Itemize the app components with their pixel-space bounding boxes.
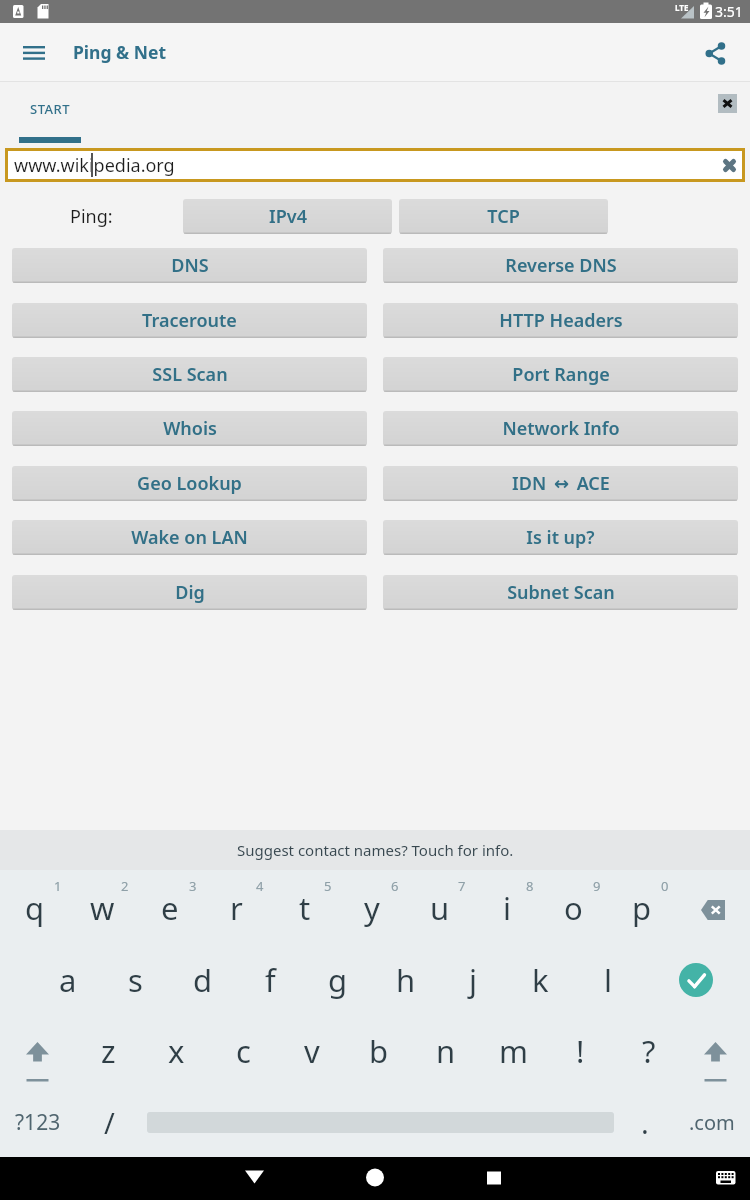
button[interactable]: Key g xyxy=(304,945,371,1015)
button[interactable]: IDN ↔ ACE xyxy=(383,466,738,501)
button[interactable]: Clear text xyxy=(717,153,741,177)
staticText: LTE xyxy=(675,2,689,13)
staticText: START xyxy=(30,100,71,118)
button[interactable]: Key m xyxy=(480,1016,547,1086)
button[interactable]: Key d xyxy=(169,945,236,1015)
staticText: e xyxy=(161,887,179,929)
staticText: y xyxy=(364,887,380,929)
staticText: 0 xyxy=(661,877,669,895)
button[interactable]: Key f xyxy=(237,945,304,1015)
staticText: x xyxy=(168,1030,185,1072)
button[interactable]: DNS xyxy=(12,248,367,283)
staticText: . xyxy=(641,1103,649,1142)
button[interactable]: Key p xyxy=(608,873,675,943)
staticText: z xyxy=(101,1030,116,1072)
button[interactable]: Wake on LAN xyxy=(12,520,367,555)
button[interactable]: Switch keyboard xyxy=(700,1157,750,1200)
staticText: Network Info xyxy=(502,416,620,441)
staticText: i xyxy=(503,887,511,929)
staticText: ?123 xyxy=(15,1108,61,1137)
button[interactable]: Key r xyxy=(203,873,270,943)
button[interactable]: Recents xyxy=(464,1157,524,1200)
staticText: c xyxy=(236,1030,251,1072)
staticText: .com xyxy=(689,1109,735,1136)
button[interactable]: Whois xyxy=(12,411,367,446)
button[interactable]: Key a xyxy=(34,945,101,1015)
staticText: g xyxy=(328,959,348,1001)
button[interactable]: Key w xyxy=(69,873,136,943)
button[interactable]: Is it up? xyxy=(383,520,738,555)
staticText: / xyxy=(104,1103,115,1142)
button[interactable]: Port Range xyxy=(383,357,738,392)
button[interactable]: Traceroute xyxy=(12,303,367,338)
button[interactable]: Open navigation menu xyxy=(13,32,55,74)
button[interactable]: Backspace xyxy=(677,875,749,945)
staticText: o xyxy=(564,887,583,929)
button[interactable]: Shift xyxy=(1,1017,73,1087)
button[interactable]: Reverse DNS xyxy=(383,248,738,283)
button[interactable]: Key b xyxy=(345,1016,412,1086)
button[interactable]: .com xyxy=(676,1089,748,1155)
button[interactable]: www.wikipedia.org xyxy=(5,148,745,182)
button[interactable]: Share xyxy=(693,31,737,75)
button[interactable]: Key o xyxy=(540,873,607,943)
staticText: 3:51 xyxy=(715,2,743,21)
button[interactable]: Key x xyxy=(143,1016,210,1086)
button[interactable]: / xyxy=(76,1089,142,1155)
button[interactable]: Key n xyxy=(412,1016,479,1086)
staticText: Suggest contact names? Touch for info. xyxy=(237,840,514,860)
button[interactable]: Key ! xyxy=(547,1016,614,1086)
button[interactable]: Key q xyxy=(1,873,68,943)
button[interactable]: Key v xyxy=(278,1016,345,1086)
button[interactable]: Suggest contact names? Touch for info. xyxy=(0,830,750,870)
button[interactable]: Home xyxy=(345,1157,405,1200)
button[interactable]: START xyxy=(19,82,81,148)
staticText: f xyxy=(265,959,276,1001)
staticText: www.wikipedia.org xyxy=(14,153,175,178)
staticText: 6 xyxy=(391,877,399,895)
staticText: m xyxy=(499,1030,528,1072)
button[interactable]: Key ? xyxy=(615,1016,682,1086)
staticText: a xyxy=(59,959,77,1001)
button[interactable]: Key i xyxy=(473,873,540,943)
staticText: Wake on LAN xyxy=(131,525,248,550)
button[interactable]: Close tab xyxy=(718,94,737,113)
button[interactable]: Key h xyxy=(372,945,439,1015)
button[interactable]: TCP xyxy=(399,199,608,234)
staticText: 5 xyxy=(324,877,332,895)
staticText: Ping: xyxy=(70,204,113,229)
button[interactable]: ?123 xyxy=(0,1089,76,1155)
button[interactable]: . xyxy=(620,1089,670,1155)
button[interactable]: Key l xyxy=(574,945,641,1015)
button[interactable]: Network Info xyxy=(383,411,738,446)
button[interactable]: Key k xyxy=(507,945,574,1015)
button[interactable]: Key t xyxy=(271,873,338,943)
staticText: p xyxy=(632,887,652,929)
button[interactable]: Geo Lookup xyxy=(12,466,367,501)
button[interactable]: SSL Scan xyxy=(12,357,367,392)
staticText: 3 xyxy=(189,877,197,895)
button[interactable]: Key j xyxy=(439,945,506,1015)
button[interactable]: HTTP Headers xyxy=(383,303,738,338)
button[interactable]: Key e xyxy=(136,873,203,943)
staticText: 8 xyxy=(526,877,534,895)
staticText: 1 xyxy=(54,877,62,895)
button[interactable]: Key y xyxy=(338,873,405,943)
staticText: Dig xyxy=(175,580,205,605)
button[interactable]: Dig xyxy=(12,575,367,610)
button[interactable]: Back xyxy=(225,1157,285,1200)
button[interactable]: Enter xyxy=(656,945,736,1015)
staticText: DNS xyxy=(171,253,209,278)
staticText: Ping & Net xyxy=(73,40,167,64)
button[interactable]: Shift xyxy=(679,1017,750,1087)
button[interactable]: Key u xyxy=(406,873,473,943)
button[interactable]: Key s xyxy=(102,945,169,1015)
staticText: n xyxy=(436,1030,456,1072)
staticText: Traceroute xyxy=(142,308,237,333)
staticText: j xyxy=(469,959,477,1001)
button[interactable]: Key z xyxy=(75,1016,142,1086)
button[interactable]: Subnet Scan xyxy=(383,575,738,610)
button[interactable]: IPv4 xyxy=(183,199,392,234)
button[interactable]: Key c xyxy=(210,1016,277,1086)
